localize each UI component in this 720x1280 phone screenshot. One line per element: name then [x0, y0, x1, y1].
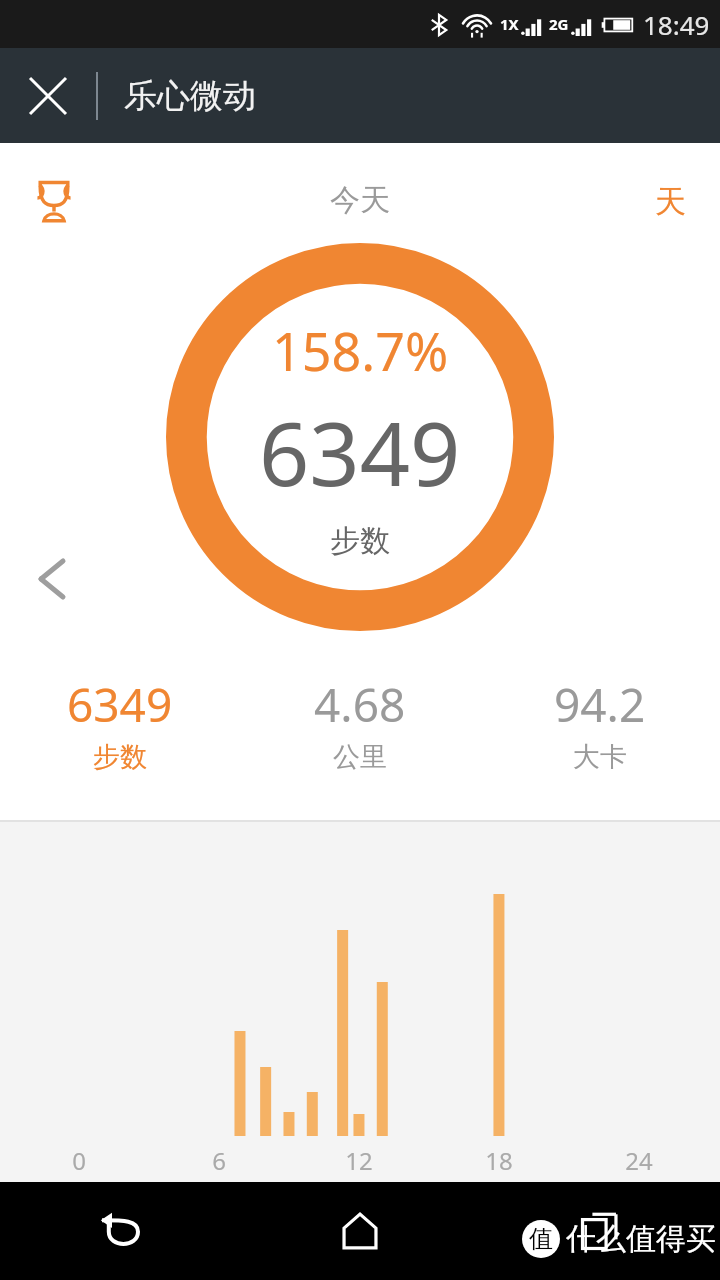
staticText: 158.7% [272, 315, 449, 386]
staticText: 1X [500, 14, 519, 34]
button[interactable]: Recent apps [480, 1182, 720, 1280]
staticText: 94.2 [554, 673, 646, 736]
staticText: 值 [529, 1224, 553, 1254]
button[interactable]: Back [0, 1182, 240, 1280]
staticText: 步数 [330, 522, 390, 560]
button[interactable]: 天 [634, 165, 706, 237]
staticText: 2G [549, 14, 569, 34]
staticText: 大卡 [573, 740, 627, 774]
staticText: 6 [212, 1144, 226, 1177]
staticText: 24 [625, 1144, 653, 1177]
staticText: 6349 [259, 392, 461, 512]
staticText: 12 [345, 1144, 373, 1177]
staticText: 天 [655, 182, 686, 221]
button[interactable]: Achievements [16, 163, 92, 239]
button[interactable]: 94.2 [480, 673, 720, 774]
button[interactable]: Home [240, 1182, 480, 1280]
staticText: 步数 [93, 740, 147, 774]
staticText: 乐心微动 [124, 75, 256, 117]
staticText: 0 [72, 1144, 86, 1177]
staticText: 公里 [333, 740, 387, 774]
staticText: 今天 [330, 181, 390, 219]
staticText: 6349 [67, 673, 173, 736]
button[interactable]: Previous day [16, 543, 88, 615]
button[interactable]: 4.68 [240, 673, 480, 774]
staticText: 18 [485, 1144, 513, 1177]
staticText: 18:49 [643, 7, 710, 42]
button[interactable]: Close [0, 48, 96, 143]
staticText: 什么值得买 [566, 1220, 716, 1258]
staticText: 4.68 [314, 673, 406, 736]
button[interactable]: 6349 [0, 673, 240, 774]
